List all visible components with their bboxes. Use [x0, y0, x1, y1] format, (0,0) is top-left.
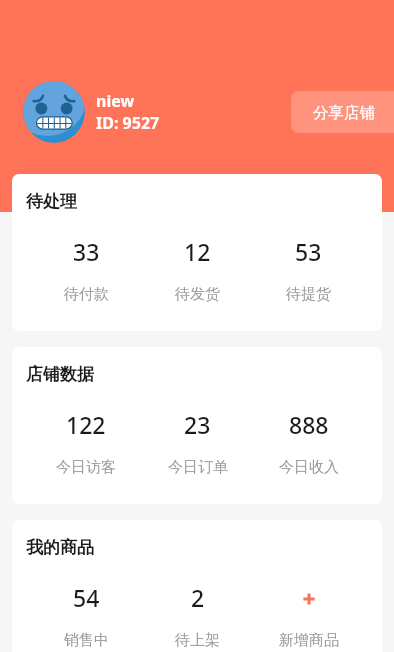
button[interactable]: Add product — [253, 582, 364, 650]
button[interactable]: 分享店铺 — [291, 91, 394, 133]
staticText: 待上架 — [175, 631, 220, 650]
button[interactable]: 2 — [142, 582, 253, 650]
button[interactable]: 12 — [142, 236, 253, 304]
staticText: 今日访客 — [56, 458, 116, 477]
staticText: niew — [96, 90, 135, 112]
other: Add product — [299, 589, 319, 609]
button[interactable]: 23 — [142, 409, 253, 477]
staticText: 23 — [184, 409, 211, 436]
staticText: 今日收入 — [279, 458, 339, 477]
button[interactable]: 53 — [253, 236, 364, 304]
staticText: 122 — [66, 409, 106, 436]
staticText: 12 — [184, 236, 211, 263]
staticText: 待提货 — [286, 285, 331, 304]
staticText: 53 — [295, 236, 322, 263]
staticText: 店铺数据 — [26, 364, 94, 385]
button[interactable]: 122 — [30, 409, 142, 477]
staticText: 888 — [289, 409, 329, 436]
staticText: 今日订单 — [168, 458, 228, 477]
staticText: 54 — [73, 582, 100, 609]
button[interactable]: 54 — [30, 582, 142, 650]
staticText: ID: 9527 — [96, 112, 160, 134]
staticText: 2 — [191, 582, 205, 609]
staticText: 分享店铺 — [313, 103, 375, 123]
staticText: 我的商品 — [26, 537, 94, 558]
button[interactable]: 33 — [30, 236, 142, 304]
button[interactable]: Avatar — [23, 81, 85, 143]
staticText: 销售中 — [64, 631, 109, 650]
staticText: 33 — [73, 236, 100, 263]
staticText: 新增商品 — [279, 631, 339, 650]
button[interactable]: 888 — [253, 409, 364, 477]
staticText: 待发货 — [175, 285, 220, 304]
staticText: 待付款 — [64, 285, 109, 304]
staticText: 待处理 — [26, 191, 77, 212]
